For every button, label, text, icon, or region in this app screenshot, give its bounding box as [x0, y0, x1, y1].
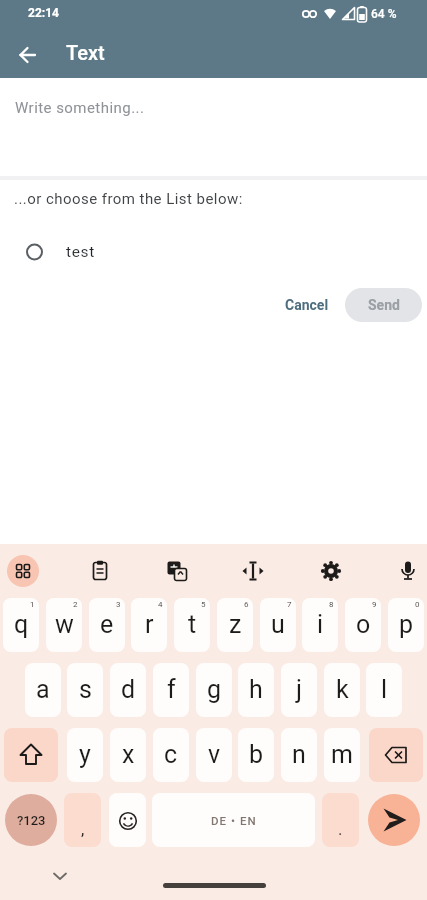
button[interactable]: y [67, 728, 103, 782]
button[interactable]: w [46, 598, 82, 652]
button[interactable]: m [324, 728, 360, 782]
button[interactable]: n [281, 728, 317, 782]
staticText: Write something... [15, 99, 145, 117]
staticText: 8 [329, 600, 334, 609]
staticText: 22:14 [28, 6, 59, 20]
staticText: 4 [158, 600, 163, 609]
button[interactable]: Cancel [279, 288, 334, 322]
staticText: l [381, 675, 388, 704]
staticText: , [81, 819, 85, 839]
button[interactable]: Write something... [0, 78, 427, 176]
staticText: w [55, 610, 74, 639]
button[interactable]: l [366, 663, 402, 717]
staticText: i [317, 610, 324, 639]
staticText: b [249, 740, 264, 769]
staticText: Send [368, 297, 400, 313]
button[interactable]: e [89, 598, 125, 652]
staticText: g [207, 675, 222, 704]
staticText: ...or choose from the List below: [14, 190, 243, 208]
button[interactable]: p [388, 598, 424, 652]
button[interactable]: , [64, 793, 101, 847]
button[interactable]: b [238, 728, 274, 782]
staticText: s [79, 675, 92, 704]
button[interactable] [315, 555, 347, 587]
button[interactable]: g [196, 663, 232, 717]
button[interactable]: a [25, 663, 61, 717]
button[interactable]: j [281, 663, 317, 717]
button[interactable]: v [196, 728, 232, 782]
staticText: n [292, 740, 306, 769]
staticText: v [208, 740, 221, 769]
staticText: h [249, 675, 263, 704]
staticText: 64 % [371, 7, 397, 21]
staticText: 3 [116, 600, 121, 609]
staticText: Cancel [285, 297, 329, 313]
staticText: m [331, 740, 353, 769]
staticText: 7 [287, 600, 292, 609]
button[interactable]: o [345, 598, 381, 652]
button[interactable] [109, 793, 146, 847]
staticText: r [145, 610, 154, 639]
button[interactable]: DE • EN [152, 793, 315, 847]
staticText: o [356, 610, 371, 639]
button[interactable] [161, 555, 193, 587]
button[interactable] [392, 555, 424, 587]
staticText: . [338, 819, 343, 839]
button[interactable]: Send [345, 288, 422, 322]
staticText: 9 [372, 600, 377, 609]
staticText: 0 [415, 600, 420, 609]
button[interactable]: t [174, 598, 210, 652]
staticText: 5 [201, 600, 206, 609]
button[interactable]: test [14, 232, 194, 272]
staticText: 2 [73, 600, 78, 609]
button[interactable]: ?123 [5, 794, 57, 846]
button[interactable]: q [3, 598, 39, 652]
button[interactable]: s [67, 663, 103, 717]
button[interactable]: d [110, 663, 146, 717]
button[interactable] [369, 728, 423, 782]
staticText: e [100, 610, 114, 639]
button[interactable]: z [217, 598, 253, 652]
button[interactable]: c [153, 728, 189, 782]
staticText: Text [66, 41, 105, 64]
staticText: a [36, 675, 50, 704]
staticText: j [296, 675, 302, 704]
staticText: k [336, 675, 349, 704]
button[interactable] [368, 794, 420, 846]
button[interactable] [9, 37, 45, 73]
staticText: x [122, 740, 135, 769]
staticText: t [188, 610, 197, 639]
button[interactable]: f [153, 663, 189, 717]
staticText: 6 [244, 600, 249, 609]
staticText: z [229, 610, 242, 639]
staticText: u [271, 610, 285, 639]
staticText: f [167, 675, 176, 704]
staticText: ?123 [17, 813, 46, 828]
button[interactable] [84, 555, 116, 587]
button[interactable] [237, 555, 269, 587]
staticText: q [14, 610, 29, 639]
staticText: y [79, 740, 91, 769]
staticText: DE • EN [211, 814, 257, 827]
staticText: p [399, 610, 414, 639]
button[interactable] [7, 555, 39, 587]
button[interactable] [4, 728, 58, 782]
staticText: c [164, 740, 178, 769]
staticText: test [66, 243, 95, 261]
button[interactable]: x [110, 728, 146, 782]
button[interactable]: k [324, 663, 360, 717]
staticText: d [121, 675, 136, 704]
button[interactable]: i [302, 598, 338, 652]
button[interactable]: h [238, 663, 274, 717]
staticText: 1 [30, 600, 35, 609]
button[interactable]: u [260, 598, 296, 652]
button[interactable]: . [322, 793, 359, 847]
button[interactable]: r [131, 598, 167, 652]
